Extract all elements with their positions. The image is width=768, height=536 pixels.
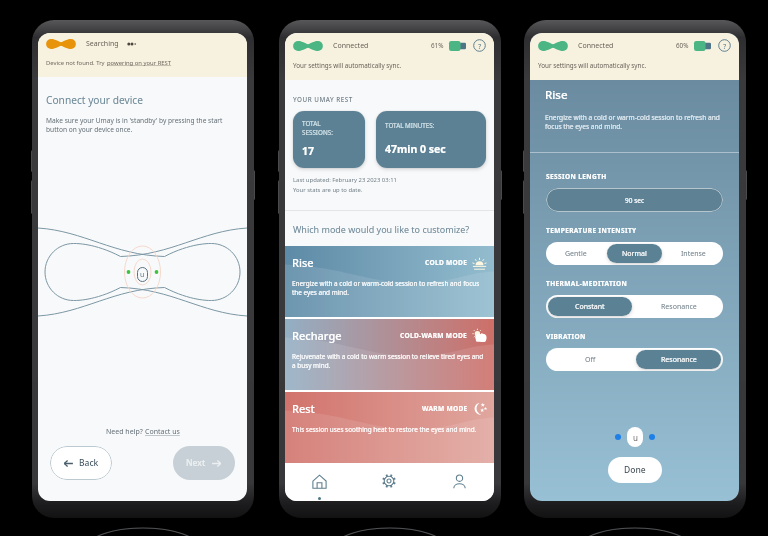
button[interactable]: Device status: [137, 267, 148, 282]
staticText: Searching: [86, 39, 119, 49]
staticText: Resonance: [661, 355, 697, 365]
staticText: Next: [186, 457, 206, 469]
staticText: Which mode would you like to customize?: [293, 223, 470, 235]
staticText: TOTAL SESSIONS:: [302, 119, 333, 137]
staticText: WARM MODE: [422, 404, 468, 413]
staticText: Need help?: [106, 427, 145, 437]
button[interactable]: Help: [718, 39, 731, 52]
button[interactable]: TOTAL MINUTES:: [376, 111, 486, 168]
staticText: SESSION LENGTH: [546, 172, 607, 181]
button[interactable]: Resonance: [636, 350, 721, 369]
staticText: This session uses soothing heat to resto…: [292, 425, 477, 434]
staticText: Energize with a cold or warm-cold sessio…: [292, 279, 487, 297]
staticText: Rest: [292, 401, 315, 416]
staticText: Connected: [578, 41, 614, 51]
button[interactable]: Rise: [285, 246, 494, 317]
staticText: u: [633, 432, 638, 443]
staticText: Your stats are up to date.: [293, 186, 363, 194]
button[interactable]: Recharge: [285, 319, 494, 390]
staticText: Device not found. Try: [46, 59, 107, 67]
button[interactable]: Gentle: [548, 244, 603, 263]
staticText: ?: [723, 41, 727, 51]
staticText: Normal: [622, 249, 647, 259]
staticText: Resonance: [661, 302, 697, 312]
button[interactable]: Home: [285, 463, 354, 501]
staticText: 17: [302, 144, 315, 158]
staticText: Make sure your Umay is in 'standby' by p…: [46, 116, 239, 134]
other: Battery: [694, 41, 711, 51]
button[interactable]: Intense: [666, 244, 721, 263]
staticText: TEMPERATURE INTENSITY: [546, 226, 637, 235]
staticText: Connect your device: [46, 93, 143, 107]
staticText: Back: [79, 457, 99, 469]
staticText: Intense: [681, 249, 706, 259]
button[interactable]: Profile: [424, 463, 494, 501]
button[interactable]: TOTAL SESSIONS:: [293, 111, 365, 168]
button[interactable]: 90 sec: [546, 188, 723, 212]
button[interactable]: Settings: [354, 463, 424, 501]
button[interactable]: Resonance: [636, 297, 721, 316]
button[interactable]: Back: [50, 446, 112, 480]
staticText: Rise: [292, 255, 314, 270]
staticText: THERMAL-MEDITATION: [546, 279, 628, 288]
button[interactable]: Constant: [548, 297, 632, 316]
staticText: Connected: [333, 41, 369, 51]
button[interactable]: Help: [473, 39, 486, 52]
staticText: 61%: [431, 41, 444, 50]
staticText: YOUR UMAY REST: [293, 95, 353, 104]
staticText: ?: [478, 41, 482, 51]
staticText: u: [140, 270, 145, 280]
staticText: Rejuvenate with a cold to warm session t…: [292, 352, 487, 370]
staticText: 47min 0 sec: [385, 142, 446, 156]
button[interactable]: Rest: [285, 392, 494, 463]
staticText: 60%: [676, 41, 689, 50]
staticText: COLD MODE: [425, 258, 468, 267]
button[interactable]: Next: [173, 446, 235, 480]
staticText: 90 sec: [625, 196, 645, 205]
staticText: VIBRATION: [546, 332, 586, 341]
button[interactable]: Done: [608, 457, 662, 483]
staticText: COLD-WARM MODE: [400, 331, 468, 340]
staticText: TOTAL MINUTES:: [385, 121, 435, 130]
staticText: Done: [624, 464, 646, 476]
staticText: Recharge: [292, 328, 342, 343]
staticText: Rise: [545, 87, 568, 103]
staticText: Energize with a cold or warm-cold sessio…: [545, 113, 724, 131]
staticText: Off: [585, 355, 596, 365]
staticText: powering on your REST: [107, 59, 172, 67]
staticText: Last updated: February 23 2023 03:11: [293, 176, 397, 184]
staticText: Gentle: [565, 249, 587, 259]
staticText: Your settings will automatically sync.: [293, 61, 402, 70]
staticText: Constant: [575, 302, 605, 312]
other: Battery: [449, 41, 466, 51]
button[interactable]: Normal: [607, 244, 662, 263]
button[interactable]: Off: [548, 350, 632, 369]
staticText: Contact us: [145, 427, 180, 437]
staticText: Your settings will automatically sync.: [538, 61, 647, 70]
